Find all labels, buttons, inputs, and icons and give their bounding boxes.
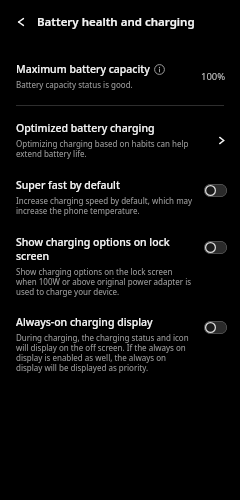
button[interactable]: Show charging options on lock screen — [204, 241, 227, 254]
staticText: 100% — [201, 70, 226, 83]
staticText: Optimizing charging based on habits can … — [16, 138, 204, 159]
staticText: During charging, the charging status and… — [16, 332, 194, 373]
button[interactable]: Info — [154, 64, 165, 75]
button[interactable]: Back — [10, 11, 32, 33]
button[interactable]: Maximum battery capacity — [0, 60, 240, 92]
staticText: Increase charging speed by default, whic… — [16, 195, 194, 216]
button[interactable]: Super fast by default — [204, 184, 227, 197]
staticText: Always-on charging display — [16, 315, 153, 329]
staticText: Optimized battery charging — [16, 121, 155, 135]
button[interactable]: Super fast by default — [0, 176, 240, 218]
button[interactable]: Show charging options on lock screen — [0, 233, 240, 299]
staticText: Show charging options on lock screen — [16, 235, 194, 263]
staticText: Battery health and charging — [37, 14, 195, 30]
button[interactable]: Always-on charging display — [0, 313, 240, 375]
button[interactable]: Optimized battery charging — [0, 119, 240, 161]
staticText: Show charging options on the lock screen… — [16, 266, 194, 297]
staticText: Super fast by default — [16, 178, 120, 192]
staticText: Maximum battery capacity — [16, 62, 150, 76]
staticText: Battery capacity status is good. — [16, 79, 133, 90]
button[interactable]: Always-on charging display — [204, 321, 227, 334]
